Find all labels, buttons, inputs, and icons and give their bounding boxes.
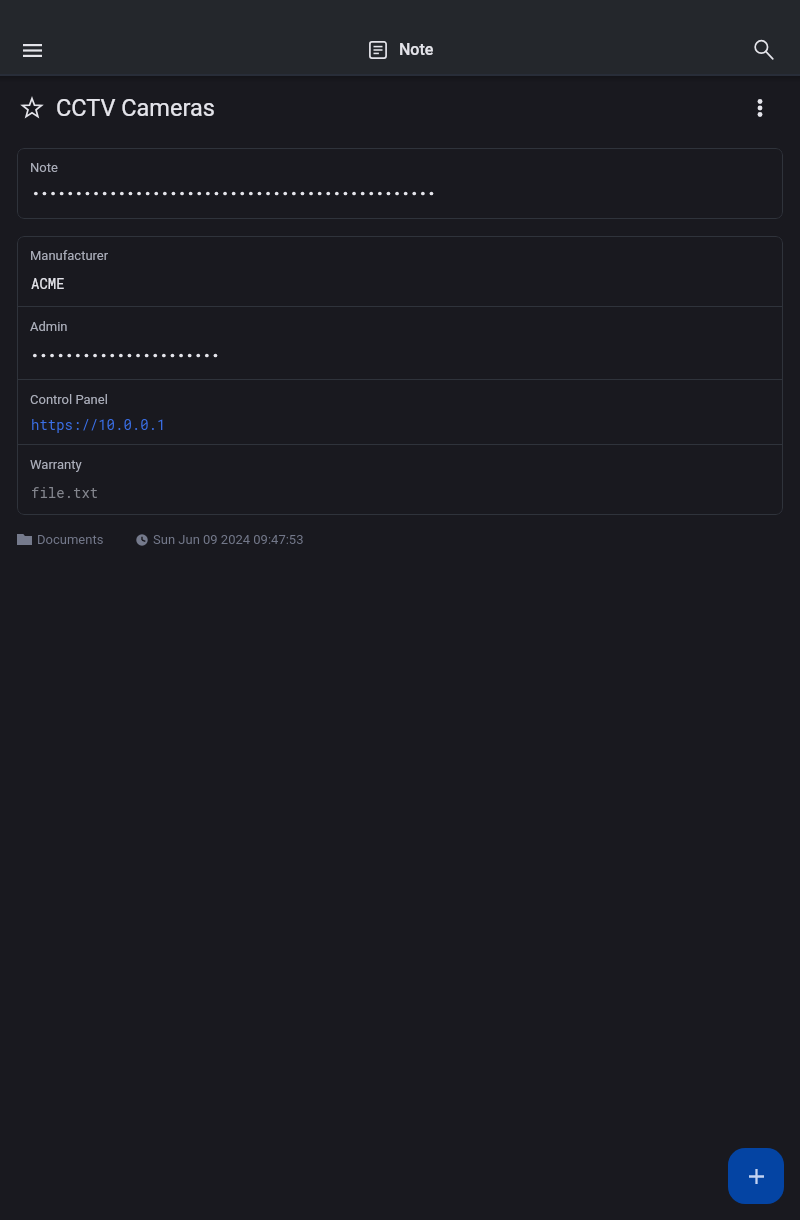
button[interactable]: Favorite [22,98,42,118]
staticText: Warranty [30,457,82,472]
button[interactable]: Documents [17,528,104,551]
button[interactable]: Manufacturer [17,236,783,306]
staticText: Documents [37,532,104,547]
staticText: Admin [30,319,68,334]
staticText: Note [399,40,434,59]
button[interactable]: More options [738,86,782,130]
button[interactable]: Control Panel [17,380,783,444]
staticText: ACME [31,274,65,292]
button[interactable]: Menu [8,26,56,74]
staticText: file.txt [31,483,99,501]
staticText: https://10.0.0.1 [31,415,166,433]
staticText: CCTV Cameras [56,94,215,122]
button[interactable]: Add [728,1148,784,1204]
button[interactable]: Note [17,148,783,219]
staticText: Note [30,160,58,175]
button[interactable]: Search [740,26,788,74]
staticText: Control Panel [30,392,108,407]
button[interactable]: Admin [17,307,783,379]
staticText: Sun Jun 09 2024 09:47:53 [153,532,304,547]
staticText: Manufacturer [30,248,109,263]
button[interactable]: Warranty [17,445,783,515]
